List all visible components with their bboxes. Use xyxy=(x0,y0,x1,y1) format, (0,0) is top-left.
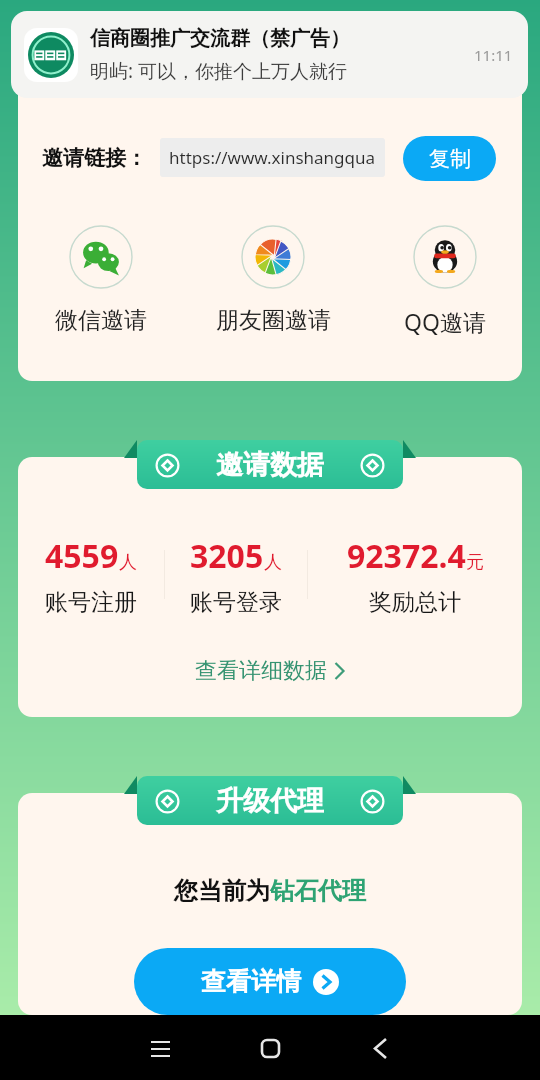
button[interactable] xyxy=(421,30,514,74)
button[interactable]: Home xyxy=(246,1024,294,1072)
button[interactable]: 信商圈推广交流群（禁广告） xyxy=(11,11,528,98)
staticText: 信商圈推广交流群（禁广告） xyxy=(90,26,350,51)
staticText: 3205 xyxy=(190,534,264,578)
staticText: 4559 xyxy=(45,534,119,578)
staticText: 人 xyxy=(119,551,137,574)
staticText: 微信邀请 xyxy=(55,306,147,335)
button[interactable]: 查看详情 xyxy=(134,948,406,1015)
button[interactable]: Back xyxy=(356,1024,404,1072)
staticText: 92372.4 xyxy=(347,534,466,578)
button[interactable]: 查看详细数据 xyxy=(189,653,351,689)
staticText: 元 xyxy=(466,551,484,574)
button[interactable]: Recents xyxy=(136,1024,184,1072)
button[interactable]: 朋友圈邀请 xyxy=(203,225,343,335)
staticText: 邀请数据 xyxy=(216,448,324,482)
staticText: 邀请链接： xyxy=(42,145,147,171)
button[interactable]: 微信邀请 xyxy=(31,225,171,335)
staticText: 11:11 xyxy=(474,45,513,65)
staticText: 朋友圈邀请 xyxy=(216,306,331,335)
staticText: 钻石代理 xyxy=(270,876,366,906)
staticText: 查看详情 xyxy=(201,966,301,997)
staticText: 账号注册 xyxy=(45,588,137,614)
staticText: 人 xyxy=(264,551,282,574)
staticText: 奖励总计 xyxy=(369,588,461,614)
staticText: QQ邀请 xyxy=(404,306,486,337)
staticText: 复制 xyxy=(429,146,471,172)
staticText: 查看详细数据 xyxy=(195,657,327,685)
staticText: https://www.xinshangqua xyxy=(169,146,376,169)
staticText: 您当前为 xyxy=(174,876,270,906)
button[interactable]: 复制 xyxy=(403,136,496,181)
staticText: 账号登录 xyxy=(190,588,282,614)
staticText: 明屿: 可以，你推个上万人就行 xyxy=(90,58,348,84)
button[interactable]: QQ邀请 xyxy=(375,225,515,337)
staticText: 升级代理 xyxy=(216,784,324,818)
